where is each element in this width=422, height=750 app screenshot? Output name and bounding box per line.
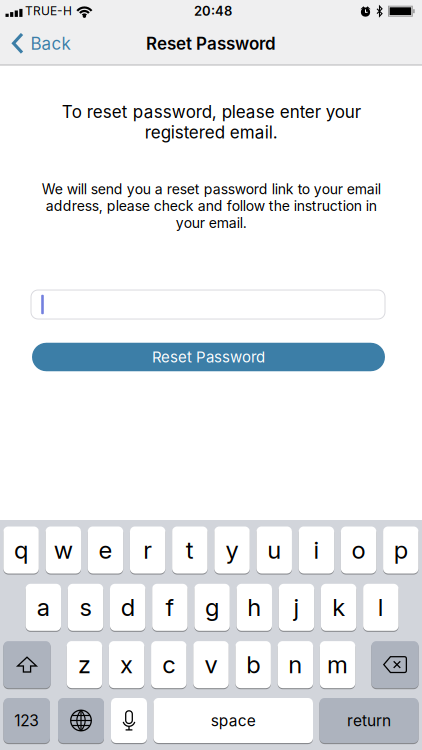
- staticText: p: [394, 535, 408, 564]
- button[interactable]: x: [109, 640, 144, 689]
- staticText: q: [14, 535, 28, 564]
- button[interactable]: Shift: [3, 640, 51, 689]
- staticText: We will send you a reset password link t…: [41, 181, 380, 231]
- button[interactable]: 123: [3, 697, 50, 744]
- staticText: f: [165, 593, 174, 622]
- button[interactable]: Email: [31, 290, 385, 319]
- button[interactable]: c: [151, 640, 186, 689]
- button[interactable]: v: [193, 640, 229, 689]
- staticText: Reset Password: [152, 348, 265, 366]
- staticText: To reset password, please enter your reg…: [61, 101, 360, 142]
- staticText: g: [205, 593, 219, 622]
- button[interactable]: h: [236, 583, 272, 632]
- staticText: r: [143, 535, 152, 564]
- button[interactable]: j: [279, 583, 314, 632]
- staticText: n: [288, 650, 302, 679]
- button[interactable]: y: [214, 525, 250, 574]
- staticText: h: [247, 593, 261, 622]
- button[interactable]: space: [153, 697, 313, 744]
- staticText: y: [225, 535, 238, 564]
- staticText: a: [37, 593, 50, 622]
- button[interactable]: l: [363, 583, 398, 632]
- staticText: return: [347, 711, 391, 730]
- staticText: w: [54, 535, 73, 564]
- button[interactable]: Reset Password: [32, 343, 385, 371]
- staticText: l: [378, 593, 384, 622]
- staticText: v: [204, 650, 217, 679]
- staticText: TRUE-H: [25, 4, 72, 18]
- button[interactable]: e: [88, 525, 123, 574]
- button[interactable]: o: [341, 525, 376, 574]
- staticText: e: [98, 535, 112, 564]
- button[interactable]: Next keyboard: [58, 697, 104, 744]
- button[interactable]: Delete: [371, 640, 419, 689]
- button[interactable]: z: [67, 640, 102, 689]
- staticText: space: [211, 711, 256, 730]
- staticText: t: [186, 535, 194, 564]
- button[interactable]: Dictate: [111, 697, 147, 744]
- button[interactable]: i: [299, 525, 334, 574]
- button[interactable]: Back: [3, 27, 79, 59]
- staticText: d: [121, 593, 135, 622]
- staticText: o: [352, 535, 366, 564]
- staticText: j: [293, 593, 299, 622]
- staticText: c: [162, 650, 175, 679]
- button[interactable]: q: [3, 525, 39, 574]
- staticText: b: [246, 650, 260, 679]
- button[interactable]: n: [278, 640, 313, 689]
- button[interactable]: b: [235, 640, 271, 689]
- staticText: s: [79, 593, 91, 622]
- staticText: 20:48: [194, 3, 232, 19]
- button[interactable]: p: [383, 525, 418, 574]
- button[interactable]: return: [319, 697, 418, 744]
- button[interactable]: d: [110, 583, 145, 632]
- button[interactable]: w: [46, 525, 81, 574]
- staticText: Reset Password: [146, 33, 276, 54]
- button[interactable]: a: [26, 583, 61, 632]
- button[interactable]: m: [320, 640, 355, 689]
- button[interactable]: k: [321, 583, 356, 632]
- staticText: Back: [30, 33, 70, 54]
- button[interactable]: u: [256, 525, 292, 574]
- button[interactable]: s: [68, 583, 103, 632]
- button[interactable]: g: [194, 583, 230, 632]
- button[interactable]: t: [172, 525, 207, 574]
- staticText: z: [78, 650, 91, 679]
- staticText: m: [327, 650, 348, 679]
- button[interactable]: r: [130, 525, 165, 574]
- staticText: u: [267, 535, 281, 564]
- staticText: k: [332, 593, 345, 622]
- staticText: i: [313, 535, 319, 564]
- staticText: 123: [14, 711, 39, 730]
- staticText: x: [120, 650, 133, 679]
- button[interactable]: f: [152, 583, 188, 632]
